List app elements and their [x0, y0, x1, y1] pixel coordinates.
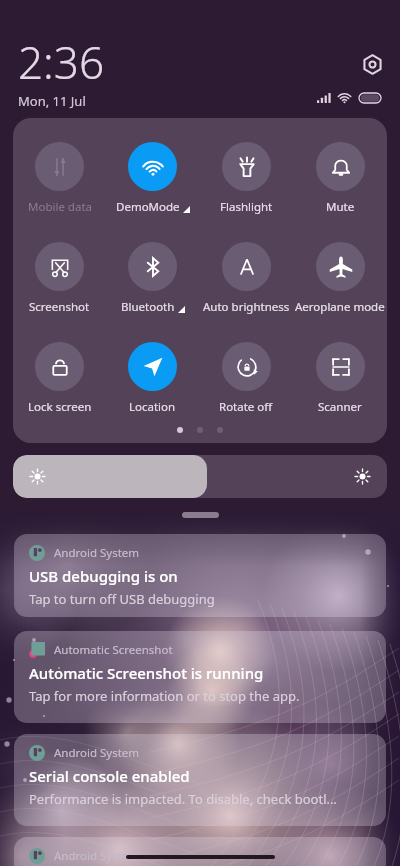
- button[interactable]: Rotate off: [199, 342, 293, 416]
- staticText: Lock screen: [28, 399, 92, 415]
- staticText: Mon, 11 Jul: [18, 92, 86, 110]
- staticText: USB debugging is on: [29, 566, 178, 586]
- button[interactable]: Mobile data: [13, 142, 106, 242]
- button[interactable]: Flashlight: [199, 142, 293, 242]
- button[interactable]: Android System: [14, 837, 386, 866]
- staticText: Screenshot: [29, 299, 90, 315]
- button[interactable]: Bluetooth: [106, 242, 199, 342]
- button[interactable]: Screenshot: [13, 242, 106, 342]
- staticText: Bluetooth: [121, 299, 175, 315]
- staticText: Tap to turn off USB debugging: [29, 590, 215, 608]
- button[interactable]: Location: [106, 342, 199, 416]
- staticText: Flashlight: [220, 199, 273, 215]
- button[interactable]: Settings: [363, 55, 382, 74]
- staticText: Serial console enabled: [29, 766, 190, 786]
- button[interactable]: [13, 455, 387, 498]
- button[interactable]: Scanner: [293, 342, 387, 416]
- staticText: Mobile data: [28, 199, 92, 215]
- button[interactable]: Aeroplane mode: [293, 242, 387, 342]
- button[interactable]: DemoMode: [106, 142, 199, 242]
- staticText: Android System: [54, 545, 140, 561]
- staticText: Automatic Screenshot is running: [29, 663, 264, 683]
- staticText: 2:36: [18, 32, 105, 92]
- button[interactable]: Lock screen: [13, 342, 106, 416]
- button[interactable]: Android System: [14, 534, 386, 617]
- button[interactable]: Mute: [293, 142, 387, 242]
- staticText: Android System: [54, 745, 140, 761]
- button[interactable]: Auto brightness: [199, 242, 293, 342]
- staticText: Scanner: [318, 399, 362, 415]
- staticText: Auto brightness: [203, 299, 290, 315]
- button[interactable]: Android System: [14, 734, 386, 826]
- button[interactable]: Automatic Screenshot: [14, 631, 386, 723]
- staticText: Aeroplane mode: [295, 299, 385, 315]
- staticText: Mute: [326, 199, 355, 215]
- staticText: Location: [129, 399, 176, 415]
- staticText: Automatic Screenshot: [54, 642, 173, 658]
- staticText: Rotate off: [219, 399, 273, 415]
- staticText: Android System: [54, 848, 140, 864]
- staticText: Performance is impacted. To disable, che…: [29, 790, 337, 808]
- staticText: Tap for more information or to stop the …: [29, 687, 300, 705]
- staticText: DemoMode: [116, 199, 180, 215]
